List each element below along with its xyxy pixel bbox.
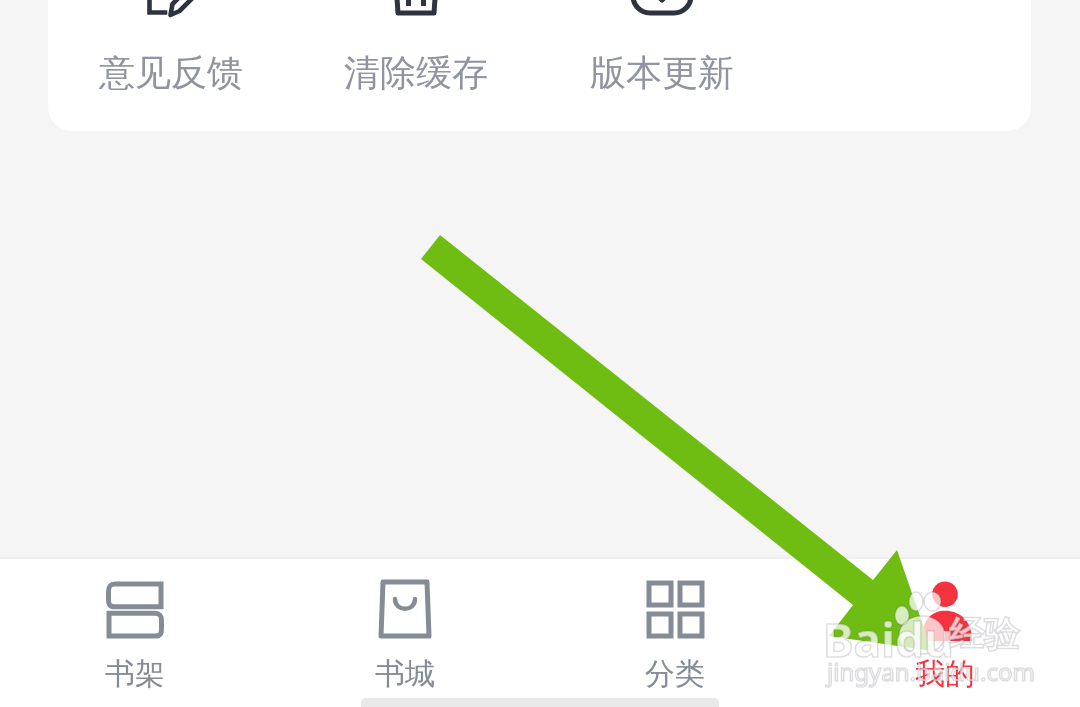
other: 书架 xyxy=(105,579,165,639)
staticText: 书架 xyxy=(105,655,165,693)
staticText: 我的 xyxy=(915,655,975,693)
button[interactable]: 书城 xyxy=(270,559,540,707)
other: 书城 xyxy=(375,579,435,639)
button[interactable]: 意见反馈 xyxy=(48,0,293,95)
button[interactable]: 清除缓存 xyxy=(293,0,539,95)
staticText: 书城 xyxy=(375,655,435,693)
button[interactable]: 版本更新 xyxy=(539,0,785,95)
staticText: 经验 xyxy=(949,612,1019,656)
other: 分类 xyxy=(645,579,705,639)
staticText: jingyan.baidu.com xyxy=(827,655,1035,688)
button[interactable]: 书架 xyxy=(0,559,270,707)
staticText: 经验 xyxy=(949,612,1019,656)
button[interactable]: 我的 xyxy=(810,559,1080,707)
button[interactable]: 分类 xyxy=(540,559,810,707)
staticText: 分类 xyxy=(645,655,705,693)
other: 我的 xyxy=(915,579,975,639)
staticText: 版本更新 xyxy=(590,50,734,95)
staticText: 清除缓存 xyxy=(344,50,488,95)
staticText: jingyan.baidu.com xyxy=(827,655,1035,688)
staticText: Baidu xyxy=(823,608,954,671)
staticText: Baidu xyxy=(823,608,954,671)
staticText: 意见反馈 xyxy=(99,50,243,95)
